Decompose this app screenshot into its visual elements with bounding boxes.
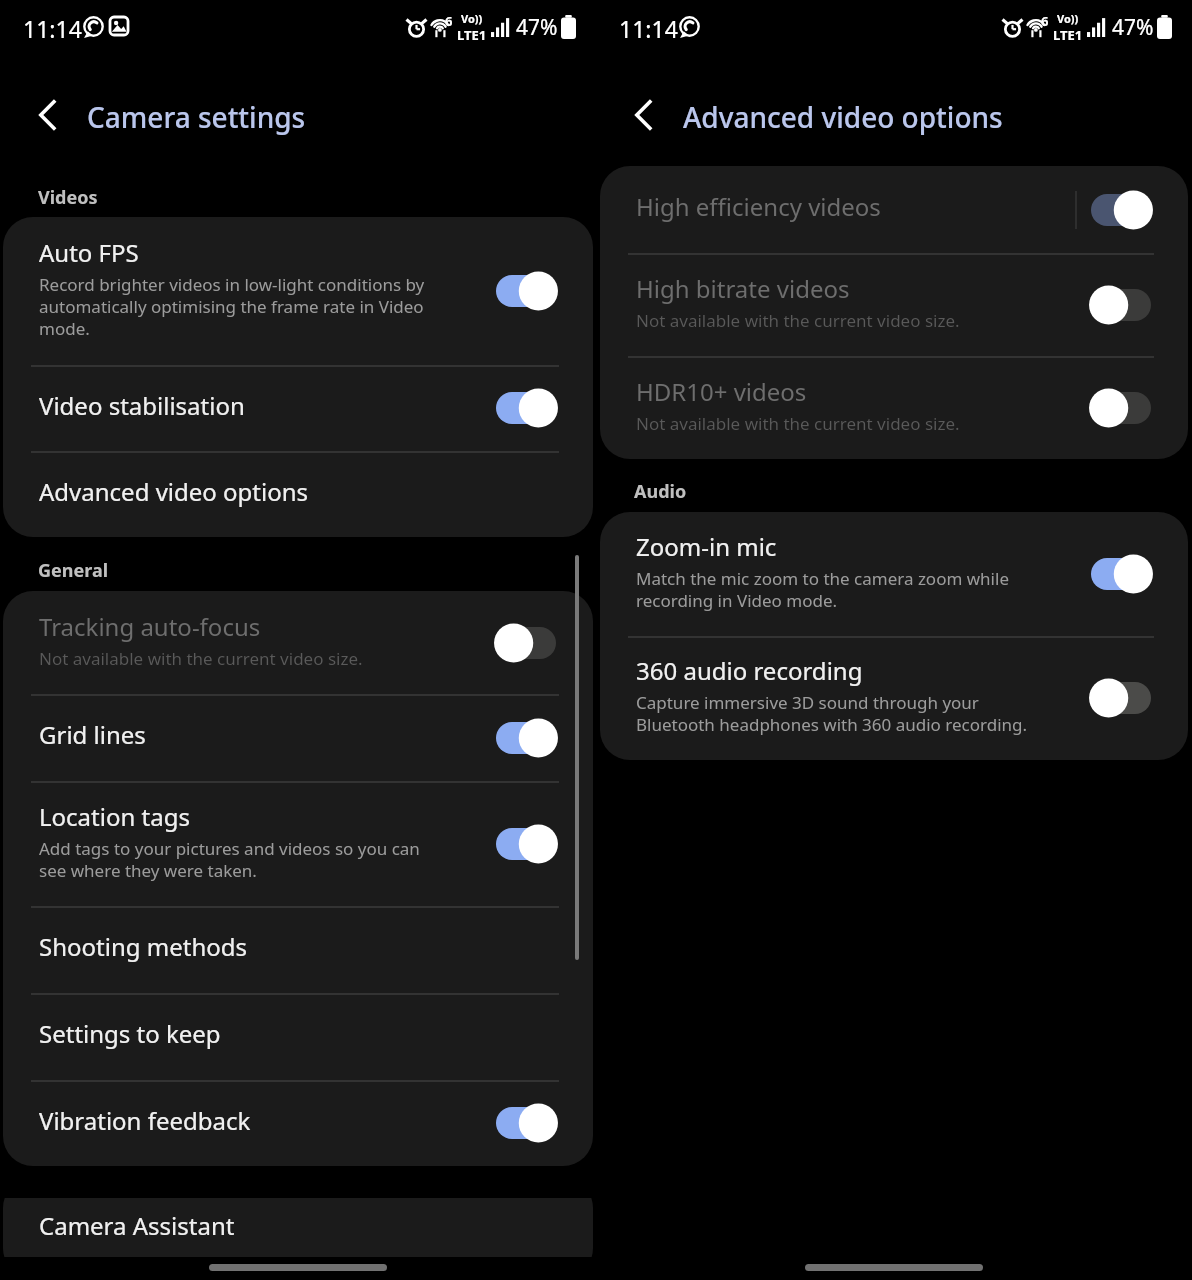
- button[interactable]: Back: [18, 85, 78, 145]
- staticText: Camera settings: [87, 98, 306, 136]
- staticText: 6: [1041, 12, 1049, 30]
- staticText: Camera Assistant: [39, 1209, 235, 1242]
- button[interactable]: Advanced video options: [3, 451, 593, 537]
- button[interactable]: 360 audio recording: [600, 636, 1188, 760]
- button[interactable]: Switch on: [496, 271, 556, 311]
- staticText: LTE1: [1053, 26, 1083, 44]
- staticText: Auto FPS: [39, 236, 139, 269]
- staticText: 11:14: [23, 13, 82, 44]
- staticText: High bitrate videos: [636, 272, 850, 305]
- staticText: Advanced video options: [683, 98, 1003, 136]
- staticText: 11:14: [619, 13, 678, 44]
- staticText: Zoom-in mic: [636, 530, 777, 563]
- button[interactable]: High efficiency videos: [600, 166, 1188, 253]
- button[interactable]: High bitrate videos: [600, 253, 1188, 356]
- staticText: Vibration feedback: [39, 1104, 251, 1137]
- staticText: Location tags: [39, 800, 190, 833]
- button[interactable]: Video stabilisation: [3, 365, 593, 451]
- staticText: Tracking auto-focus: [39, 610, 261, 643]
- staticText: Match the mic zoom to the camera zoom wh…: [636, 567, 1030, 612]
- staticText: 360 audio recording: [636, 654, 863, 687]
- button[interactable]: Switch on: [496, 1103, 556, 1143]
- staticText: General: [38, 558, 109, 583]
- button[interactable]: Switch on: [1091, 190, 1151, 230]
- button[interactable]: Switch on: [496, 824, 556, 864]
- button[interactable]: Switch on: [496, 388, 556, 428]
- staticText: 47%: [516, 13, 558, 42]
- button[interactable]: Switch off: [1091, 678, 1151, 718]
- button[interactable]: Switch on: [496, 718, 556, 758]
- staticText: Capture immersive 3D sound through your …: [636, 691, 1048, 736]
- button[interactable]: Switch on: [1091, 554, 1151, 594]
- button[interactable]: Grid lines: [3, 694, 593, 781]
- staticText: Audio: [634, 479, 687, 504]
- button[interactable]: Camera Assistant: [3, 1198, 593, 1257]
- button[interactable]: Settings to keep: [3, 993, 593, 1080]
- button[interactable]: Shooting methods: [3, 906, 593, 993]
- staticText: 47%: [1112, 13, 1154, 42]
- staticText: Record brighter videos in low-light cond…: [39, 273, 435, 340]
- staticText: Not available with the current video siz…: [636, 412, 960, 435]
- staticText: Not available with the current video siz…: [636, 309, 960, 332]
- staticText: Vo)): [461, 11, 483, 26]
- staticText: HDR10+ videos: [636, 375, 807, 408]
- staticText: Add tags to your pictures and videos so …: [39, 837, 435, 882]
- button[interactable]: Zoom-in mic: [600, 512, 1188, 636]
- button[interactable]: Tracking auto-focus: [3, 591, 593, 694]
- staticText: Video stabilisation: [39, 389, 245, 422]
- button[interactable]: Back: [614, 85, 674, 145]
- staticText: Shooting methods: [39, 930, 247, 963]
- staticText: Videos: [38, 185, 98, 210]
- button[interactable]: Switch off: [496, 623, 556, 663]
- staticText: Settings to keep: [39, 1017, 221, 1050]
- staticText: Advanced video options: [39, 475, 309, 508]
- button[interactable]: Switch off: [1091, 388, 1151, 428]
- button[interactable]: HDR10+ videos: [600, 356, 1188, 459]
- button[interactable]: Switch off: [1091, 285, 1151, 325]
- staticText: High efficiency videos: [636, 190, 881, 223]
- staticText: Grid lines: [39, 718, 146, 751]
- button[interactable]: Auto FPS: [3, 217, 593, 365]
- staticText: Not available with the current video siz…: [39, 647, 363, 670]
- button[interactable]: Location tags: [3, 781, 593, 906]
- button[interactable]: Vibration feedback: [3, 1080, 593, 1166]
- staticText: 6: [445, 12, 453, 30]
- staticText: Vo)): [1057, 11, 1079, 26]
- staticText: LTE1: [457, 26, 487, 44]
